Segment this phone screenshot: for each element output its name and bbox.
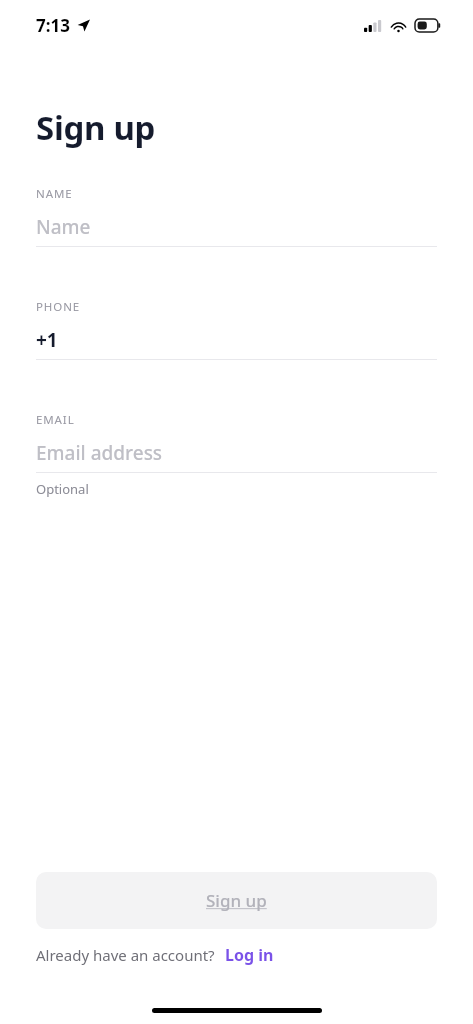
staticText: +1 xyxy=(36,327,58,353)
staticText: NAME xyxy=(36,186,73,202)
staticText: Optional xyxy=(36,480,89,498)
staticText: Email address xyxy=(36,440,163,466)
staticText: Log in xyxy=(225,944,274,966)
staticText: 7:13 xyxy=(36,14,70,37)
button[interactable]: Name xyxy=(36,214,437,240)
staticText: EMAIL xyxy=(36,412,75,428)
button[interactable]: +1 xyxy=(36,327,437,353)
staticText: Name xyxy=(36,214,91,240)
button[interactable]: Log in xyxy=(225,944,274,966)
button[interactable]: Email address xyxy=(36,440,437,466)
staticText: Already have an account? xyxy=(36,945,215,965)
staticText: Sign up xyxy=(206,889,267,912)
staticText: PHONE xyxy=(36,299,81,315)
button[interactable]: Sign up xyxy=(36,872,437,929)
staticText: Sign up xyxy=(36,105,156,150)
